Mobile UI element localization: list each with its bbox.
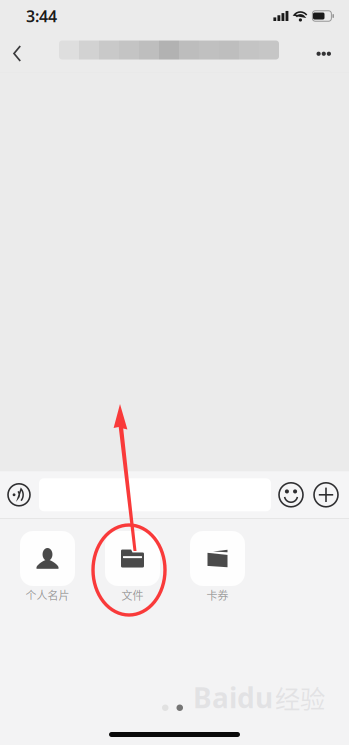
button[interactable]: More functions — [314, 476, 349, 514]
button[interactable] — [39, 478, 271, 511]
staticText: 文件 — [121, 587, 143, 603]
button[interactable]: 个人名片 — [20, 531, 75, 603]
staticText: 个人名片 — [25, 587, 69, 603]
button[interactable]: More — [302, 28, 349, 72]
button[interactable]: Voice message — [0, 476, 39, 514]
staticText: 卡券 — [206, 587, 228, 603]
staticText: Baidu — [193, 679, 273, 716]
button[interactable]: Emoji — [271, 476, 314, 514]
button[interactable]: 文件 — [105, 531, 160, 603]
button[interactable]: Back — [0, 28, 35, 72]
button[interactable]: 卡券 — [190, 531, 245, 603]
staticText: 经验 — [275, 679, 325, 716]
staticText: 3:44 — [26, 5, 57, 27]
